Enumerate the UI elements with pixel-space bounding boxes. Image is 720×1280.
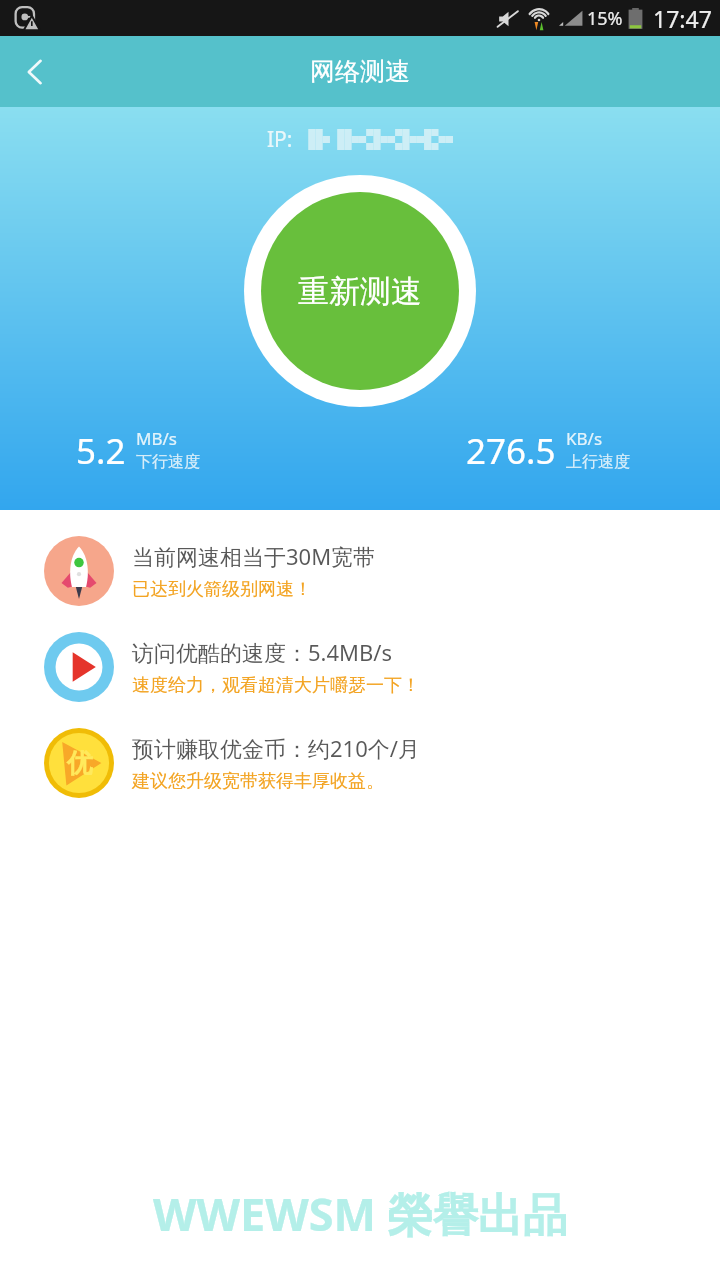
staticText: 网络测速 xyxy=(310,56,410,87)
staticText: MB/s xyxy=(136,427,177,450)
staticText: 5.2 xyxy=(76,427,126,475)
button[interactable]: 访问优酷的速度：5.4MB/s xyxy=(0,630,720,704)
button[interactable]: 优 xyxy=(0,726,720,800)
staticText: 预计赚取优金币：约210个/月 xyxy=(132,733,420,763)
staticText: 当前网速相当于30M宽带 xyxy=(132,541,376,571)
staticText: 访问优酷的速度：5.4MB/s xyxy=(132,637,393,667)
staticText: 重新测速 xyxy=(298,272,422,311)
staticText: WWEWSM 榮譽出品 xyxy=(153,1183,568,1244)
staticText: 已达到火箭级别网速！ xyxy=(132,578,312,601)
button[interactable]: Back xyxy=(0,37,70,107)
staticText: IP: xyxy=(267,125,293,154)
button[interactable]: 当前网速相当于30M宽带 xyxy=(0,534,720,608)
button[interactable]: 重新测速 xyxy=(261,192,459,390)
staticText: 建议您升级宽带获得丰厚收益。 xyxy=(132,770,384,793)
staticText: 下行速度 xyxy=(136,452,200,472)
staticText: KB/s xyxy=(566,427,603,450)
staticText: 15% xyxy=(587,6,623,31)
staticText: 速度给力，观看超清大片嚼瑟一下！ xyxy=(132,674,420,697)
staticText: 上行速度 xyxy=(566,452,630,472)
staticText: 17:47 xyxy=(653,3,712,34)
staticText: 优 xyxy=(67,747,93,780)
staticText: 276.5 xyxy=(466,427,556,475)
